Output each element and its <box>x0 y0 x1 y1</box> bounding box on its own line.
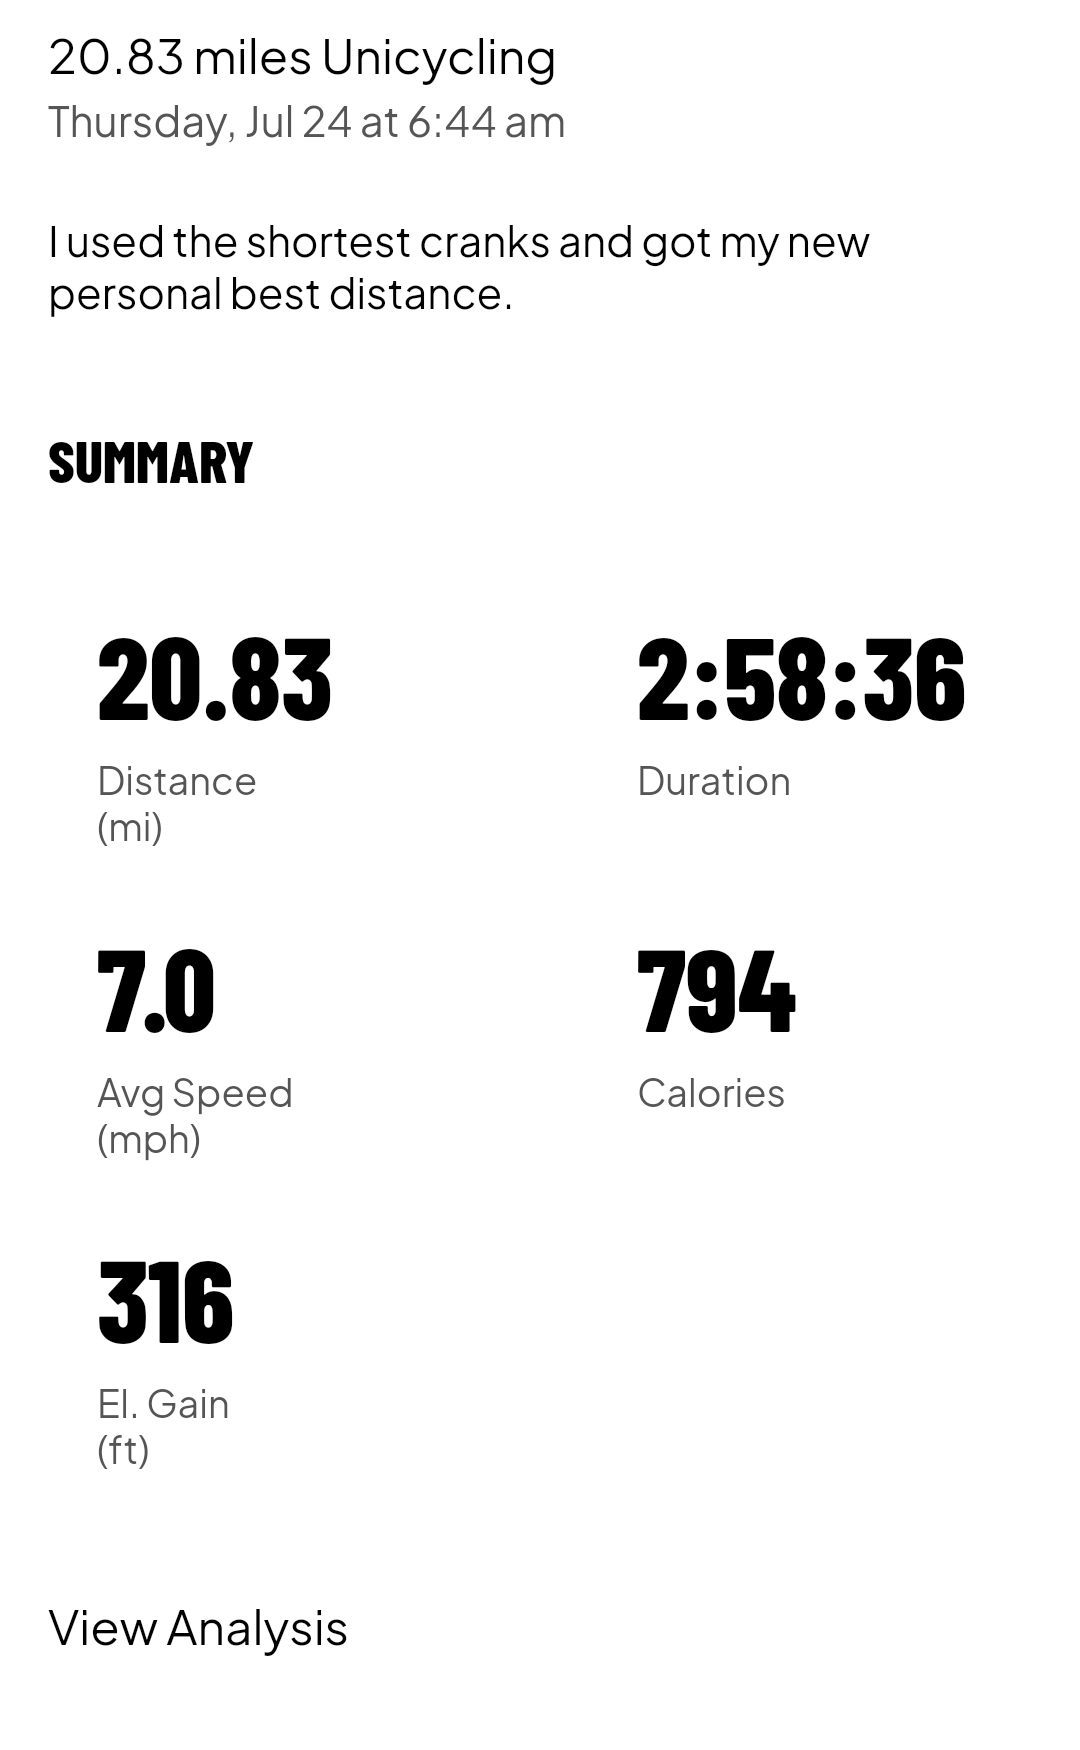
staticText: El. Gain <box>97 1380 230 1426</box>
button[interactable]: 7.0 <box>81 904 581 1162</box>
button[interactable]: 794 <box>621 904 1080 1114</box>
staticText: 316 <box>97 1227 235 1366</box>
button[interactable]: 316 <box>81 1215 581 1473</box>
staticText: Avg Speed <box>97 1069 294 1115</box>
staticText: Duration <box>637 757 792 803</box>
staticText: 794 <box>637 916 797 1055</box>
staticText: (mi) <box>97 803 163 849</box>
button[interactable]: 20.83 <box>81 592 581 850</box>
staticText: 20.83 <box>97 604 333 743</box>
staticText: SUMMARY <box>48 424 255 495</box>
staticText: (mph) <box>97 1115 202 1161</box>
staticText: I used the shortest cranks and got my ne… <box>48 214 948 318</box>
staticText: Calories <box>637 1069 786 1115</box>
staticText: 7.0 <box>97 916 216 1055</box>
button[interactable]: View Analysis <box>30 1576 390 1674</box>
staticText: 20.83 miles Unicycling <box>48 23 558 85</box>
staticText: (ft) <box>97 1426 150 1472</box>
staticText: Distance <box>97 757 258 803</box>
button[interactable]: 2:58:36 <box>621 592 1080 802</box>
staticText: Thursday, Jul 24 at 6:44 am <box>48 93 567 147</box>
staticText: View Analysis <box>48 1594 350 1656</box>
staticText: 2:58:36 <box>637 604 967 743</box>
